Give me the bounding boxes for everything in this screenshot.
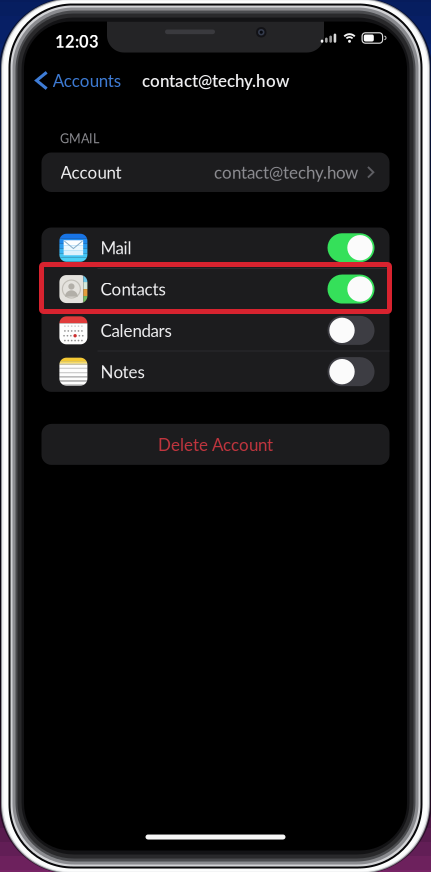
button[interactable]: Contacts bbox=[41, 269, 389, 309]
staticText: Accounts bbox=[53, 70, 121, 91]
staticText: Notes bbox=[101, 361, 145, 382]
button[interactable]: Delete Account bbox=[41, 424, 389, 465]
staticText: contact@techy.how bbox=[214, 162, 358, 182]
button[interactable]: Accounts bbox=[24, 65, 131, 95]
button[interactable]: Account bbox=[41, 152, 389, 192]
staticText: contact@techy.how bbox=[142, 70, 289, 91]
staticText: Account bbox=[60, 162, 121, 182]
staticText: Delete Account bbox=[158, 434, 273, 454]
staticText: GMAIL bbox=[60, 131, 99, 146]
button[interactable]: Calendars bbox=[41, 310, 389, 351]
staticText: Calendars bbox=[101, 320, 172, 340]
button[interactable]: Notes bbox=[41, 351, 389, 392]
staticText: Contacts bbox=[101, 279, 166, 299]
staticText: Mail bbox=[101, 238, 132, 258]
button[interactable]: Mail bbox=[41, 227, 389, 268]
staticText: 12:03 bbox=[55, 31, 99, 51]
